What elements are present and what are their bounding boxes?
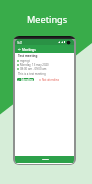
staticText: Not attending — [42, 78, 60, 81]
staticText: This is a test meeting — [18, 72, 46, 76]
staticText: mgmgt — [20, 59, 30, 63]
staticText: Monday, 13 may 2020 — [20, 63, 49, 67]
staticText: Meetings — [27, 13, 68, 26]
staticText: Attending — [21, 78, 34, 81]
button[interactable]: Back — [17, 47, 21, 51]
button[interactable]: Attending — [17, 78, 34, 81]
staticText: 9:41 — [17, 41, 23, 45]
button[interactable]: Not attending — [39, 78, 60, 81]
staticText: 08:00 am - 09:00 am — [20, 67, 47, 71]
staticText: Meetings — [22, 48, 36, 52]
staticText: Test meeting — [18, 54, 38, 58]
